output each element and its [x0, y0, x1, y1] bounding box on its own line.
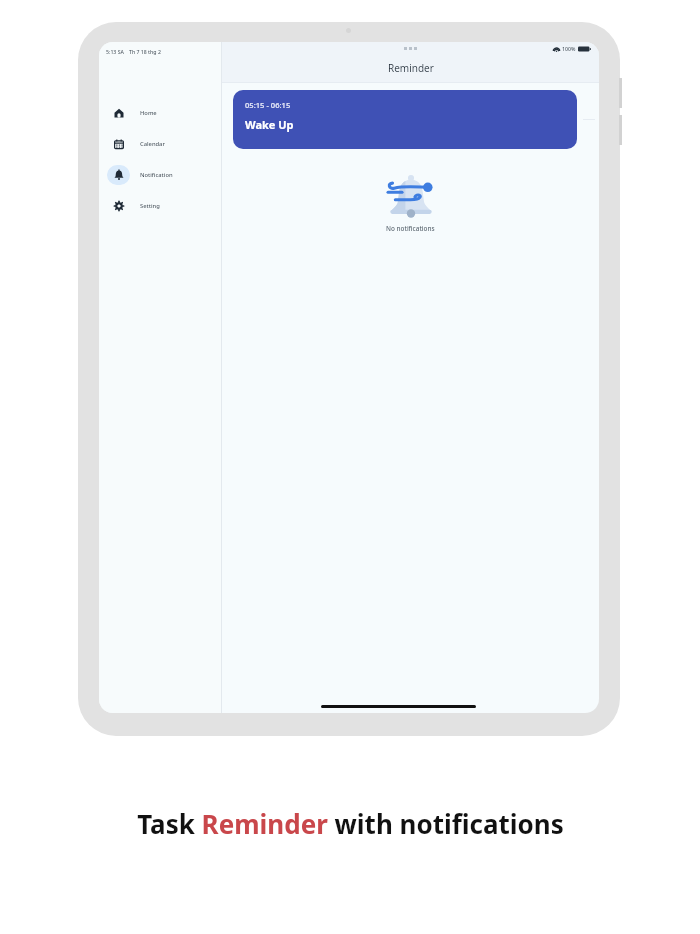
staticText: Th 7 18 thg 2: [129, 48, 161, 55]
staticText: Reminder: [388, 61, 434, 75]
staticText: Calendar: [140, 140, 165, 148]
staticText: No notifications: [386, 224, 435, 233]
button[interactable]: Calendar: [99, 133, 222, 155]
button[interactable]: 05:15 - 06:15: [233, 90, 577, 149]
staticText: 100%: [562, 45, 576, 52]
button[interactable]: Home: [99, 102, 222, 124]
button[interactable]: Setting: [99, 195, 222, 217]
staticText: 5:13 SA: [106, 48, 124, 55]
staticText: Task Reminder with notifications: [137, 806, 564, 841]
button[interactable]: Notification: [99, 164, 222, 186]
staticText: Wake Up: [245, 117, 294, 132]
staticText: Setting: [140, 202, 160, 210]
staticText: Home: [140, 109, 157, 117]
staticText: 05:15 - 06:15: [245, 100, 291, 110]
staticText: Notification: [140, 171, 173, 179]
